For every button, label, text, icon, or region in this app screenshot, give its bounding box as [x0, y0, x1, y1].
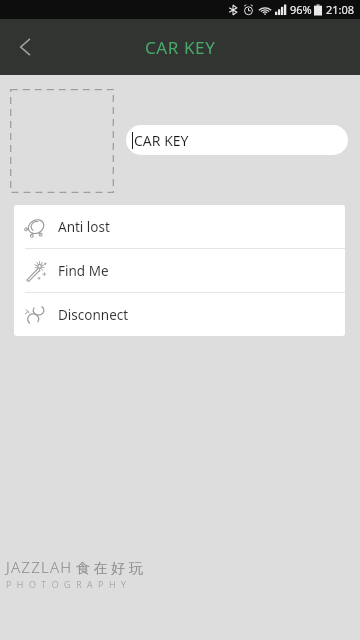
staticText: 96%: [290, 2, 312, 17]
staticText: P H O T O G R A P H Y: [6, 578, 128, 590]
staticText: 21:08: [326, 2, 355, 17]
button[interactable]: Add photo: [10, 89, 114, 193]
staticText: CAR KEY: [145, 36, 216, 59]
staticText: JAZZLAH: [6, 557, 73, 577]
button[interactable]: Find Me: [14, 249, 345, 292]
staticText: Disconnect: [58, 306, 129, 324]
button[interactable]: Disconnect: [14, 293, 345, 336]
staticText: Anti lost: [58, 218, 110, 236]
staticText: Find Me: [58, 262, 109, 280]
button[interactable]: Anti lost: [14, 205, 345, 248]
staticText: 食 在 好 玩: [76, 558, 143, 577]
button[interactable]: Back: [0, 21, 52, 73]
staticText: CAR KEY: [134, 131, 189, 150]
button[interactable]: CAR KEY: [126, 125, 348, 155]
